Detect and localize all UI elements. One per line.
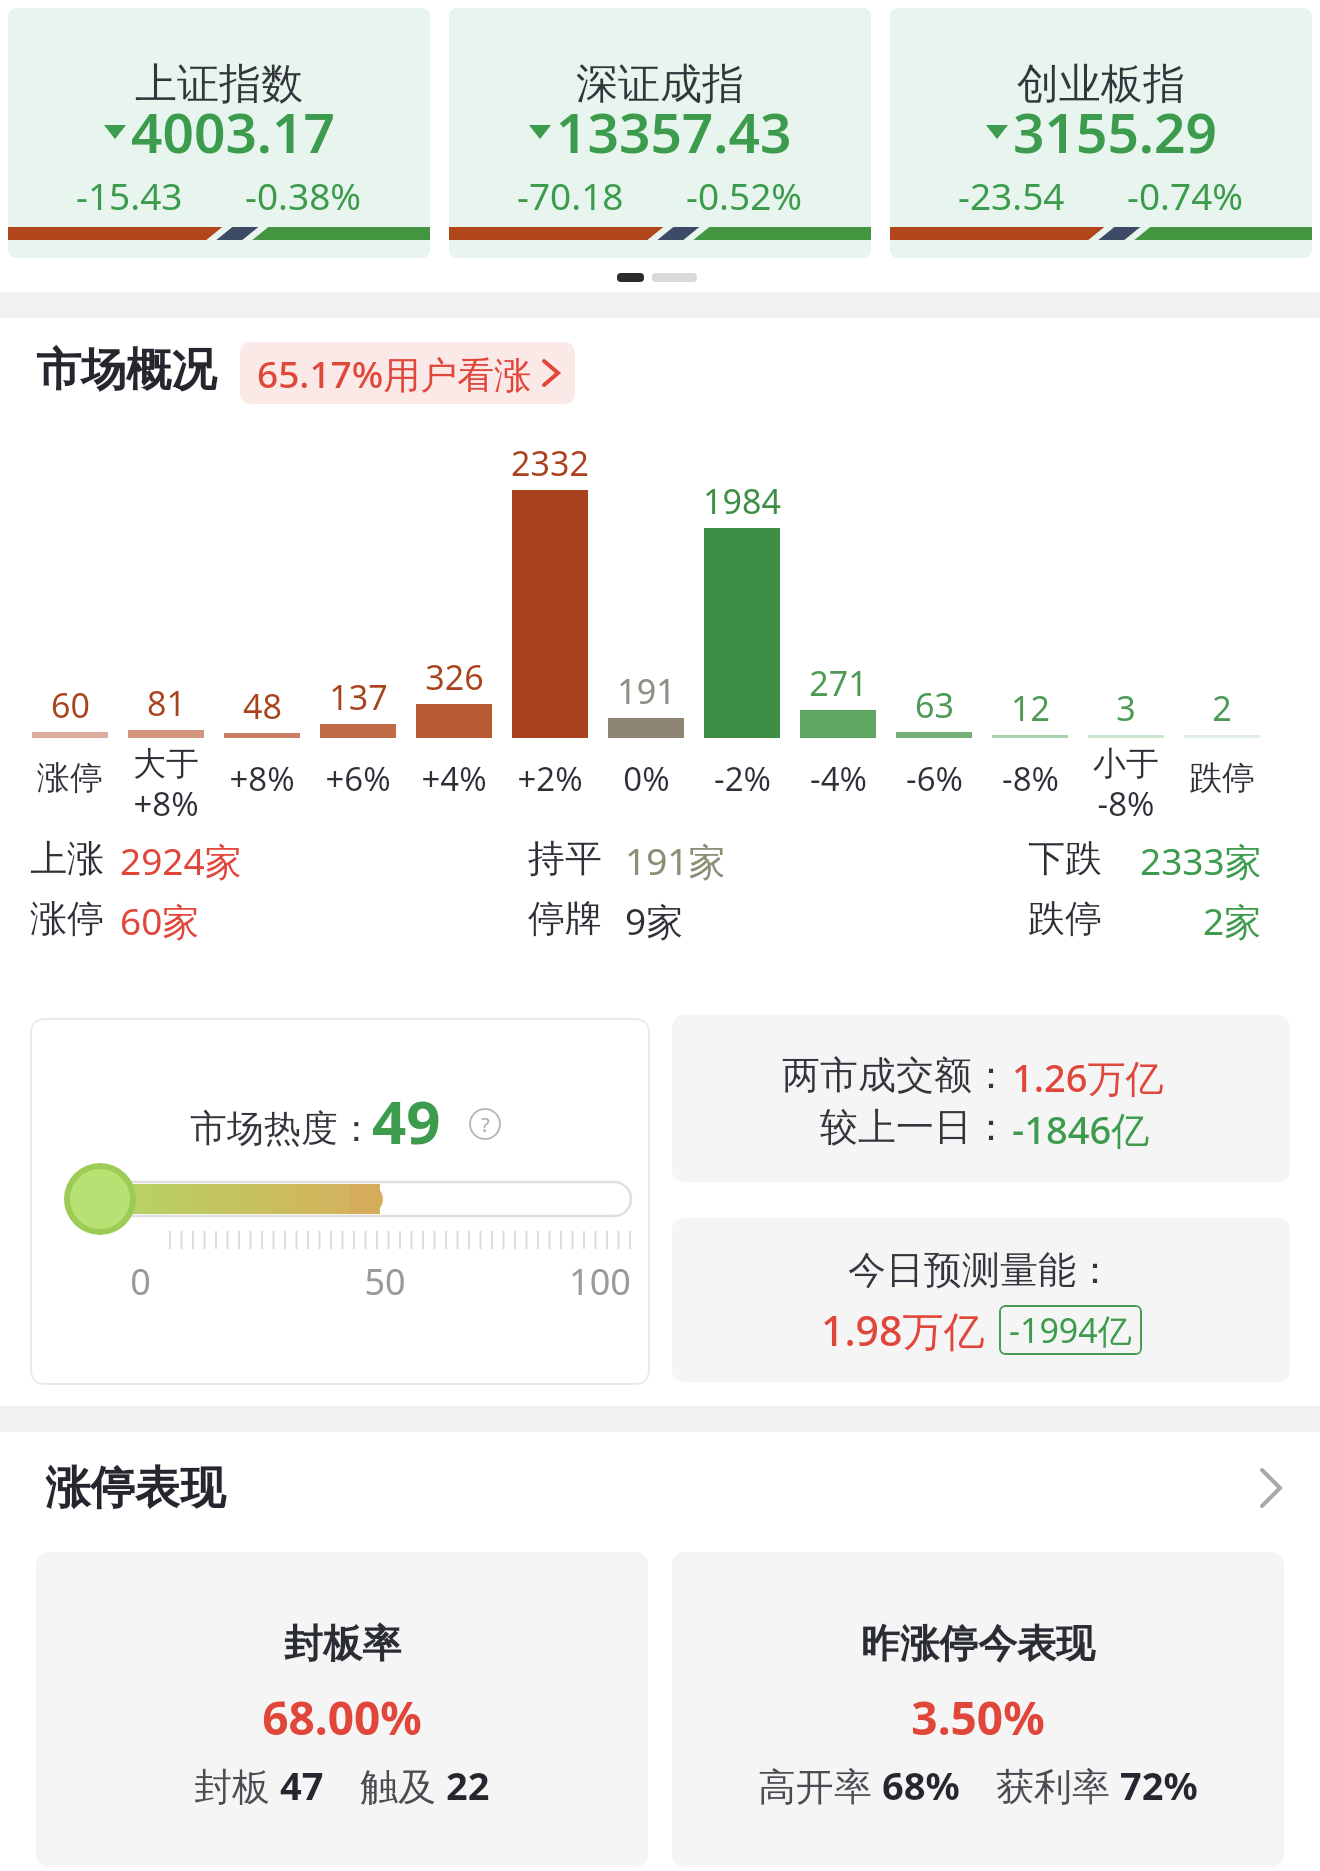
button[interactable]: 上证指数: [8, 8, 430, 258]
staticText: 60: [51, 682, 90, 722]
staticText: 小于 -8%: [1093, 743, 1159, 826]
staticText: -2%: [714, 756, 771, 801]
button[interactable]: 今日预测量能：: [672, 1218, 1290, 1382]
staticText: 市场概况: [36, 342, 216, 399]
staticText: 137: [329, 674, 388, 714]
button[interactable]: 深证成指: [449, 8, 871, 258]
staticText: 昨涨停今表现: [861, 1619, 1095, 1668]
staticText: 停牌: [528, 895, 602, 942]
button[interactable]: 65.17%用户看涨: [240, 342, 575, 404]
staticText: 触及: [360, 1759, 446, 1811]
button[interactable]: 两市成交额：: [672, 1015, 1290, 1182]
staticText: 封板: [194, 1759, 280, 1811]
staticText: -1994亿: [1009, 1307, 1132, 1353]
staticText: 市场热度：: [190, 1105, 375, 1152]
staticText: 下跌: [1028, 835, 1102, 882]
staticText: -8%: [1002, 756, 1059, 801]
staticText: 68%: [882, 1759, 960, 1811]
staticText: 68.00%: [262, 1686, 422, 1742]
staticText: +2%: [517, 756, 583, 801]
staticText: 较上一日：: [820, 1103, 1010, 1151]
staticText: 上证指数: [135, 58, 303, 111]
staticText: 高开率: [758, 1759, 882, 1811]
staticText: -4%: [810, 756, 867, 801]
staticText: 持平: [528, 835, 602, 882]
staticText: 63: [915, 682, 954, 722]
staticText: +8%: [229, 756, 295, 801]
staticText: 191家: [625, 835, 726, 886]
staticText: 跌停: [1189, 757, 1255, 799]
staticText: +4%: [421, 756, 487, 801]
staticText: 9家: [625, 895, 684, 946]
button[interactable]: 涨停表现: [0, 1455, 1320, 1521]
staticText: 获利率: [996, 1759, 1120, 1811]
staticText: 涨停: [30, 895, 104, 942]
staticText: 3.50%: [911, 1686, 1045, 1742]
staticText: 0%: [623, 756, 670, 801]
staticText: 2332: [511, 440, 589, 480]
staticText: 13357.43: [556, 94, 792, 169]
staticText: 49: [372, 1080, 441, 1162]
staticText: 191: [617, 668, 676, 708]
staticText: 上涨: [30, 835, 104, 882]
staticText: 涨停: [37, 757, 103, 799]
staticText: -23.54: [958, 170, 1065, 220]
button[interactable]: 创业板指: [890, 8, 1312, 258]
staticText: 2333家: [1140, 835, 1262, 886]
staticText: 2: [1212, 685, 1232, 725]
staticText: 1.26万亿: [1012, 1051, 1164, 1103]
button[interactable]: 封板率: [36, 1552, 648, 1867]
button[interactable]: 昨涨停今表现: [672, 1552, 1284, 1867]
button[interactable]: 市场热度：: [30, 1018, 650, 1385]
staticText: 65.17%用户看涨: [257, 348, 532, 399]
staticText: 大于 +8%: [133, 743, 199, 826]
staticText: 60家: [120, 895, 200, 946]
staticText: -70.18: [517, 170, 624, 220]
staticText: -0.74%: [1127, 170, 1244, 220]
staticText: 两市成交额：: [782, 1051, 1010, 1099]
staticText: 48: [243, 683, 282, 723]
staticText: 50: [364, 1257, 406, 1297]
staticText: -0.52%: [686, 170, 803, 220]
staticText: 100: [569, 1257, 631, 1297]
staticText: 深证成指: [576, 58, 744, 111]
staticText: 3155.29: [1013, 94, 1217, 169]
staticText: 271: [809, 660, 868, 700]
staticText: 12: [1011, 685, 1050, 725]
staticText: 22: [446, 1759, 490, 1811]
staticText: 0: [130, 1257, 151, 1297]
staticText: 72%: [1120, 1759, 1198, 1811]
staticText: 1.98万亿: [821, 1302, 985, 1358]
staticText: 创业板指: [1017, 58, 1185, 111]
staticText: 封板率: [284, 1619, 401, 1668]
staticText: 81: [147, 680, 186, 720]
staticText: 2924家: [120, 835, 242, 886]
staticText: 47: [280, 1759, 324, 1811]
staticText: 4003.17: [131, 94, 335, 169]
staticText: -6%: [906, 756, 963, 801]
staticText: 1984: [703, 478, 781, 518]
staticText: 3: [1116, 685, 1136, 725]
staticText: 跌停: [1028, 895, 1102, 942]
staticText: +6%: [325, 756, 391, 801]
staticText: ?: [481, 1111, 490, 1138]
staticText: 今日预测量能：: [848, 1246, 1114, 1294]
staticText: 涨停表现: [45, 1460, 225, 1517]
staticText: -1846亿: [1012, 1103, 1150, 1155]
staticText: -15.43: [76, 170, 183, 220]
staticText: 326: [425, 654, 484, 694]
staticText: 2家: [1203, 895, 1262, 946]
staticText: -0.38%: [245, 170, 362, 220]
